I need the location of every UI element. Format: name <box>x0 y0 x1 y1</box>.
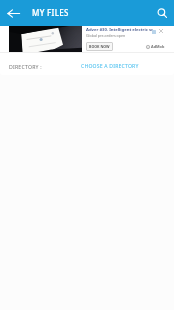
staticText: BOOK NOW <box>89 44 110 49</box>
button[interactable]: BOOK NOW <box>86 42 113 51</box>
staticText: AdMob <box>151 44 165 49</box>
button[interactable]: Back <box>0 0 27 26</box>
button[interactable]: Search <box>150 0 174 26</box>
button[interactable]: Close ad <box>158 28 164 34</box>
button[interactable]: Adver #30. Intelligent electric sc <box>0 26 174 52</box>
staticText: CHOOSE A DIRECTORY <box>81 63 139 70</box>
staticText: DIRECTORY : <box>9 63 42 70</box>
button[interactable]: CHOOSE A DIRECTORY <box>75 57 145 75</box>
staticText: MY FILES <box>32 7 69 18</box>
button[interactable]: Ad choices <box>151 29 156 34</box>
staticText: Global pre-orders open <box>86 33 126 38</box>
staticText: Adver #30. Intelligent electric sc <box>86 27 154 33</box>
